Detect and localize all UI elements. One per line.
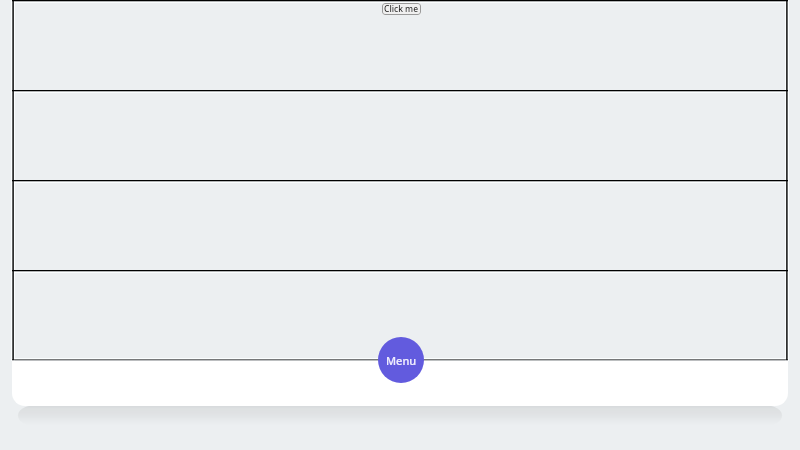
button[interactable]: List item (12, 270, 788, 360)
button[interactable]: List item (12, 0, 788, 90)
button[interactable]: List item (12, 180, 788, 270)
button[interactable]: Click me (382, 3, 421, 15)
staticText: Menu (386, 353, 417, 368)
button[interactable]: List item (12, 90, 788, 180)
button[interactable]: Bottom bar (12, 361, 788, 406)
staticText: Click me (384, 3, 419, 15)
button[interactable]: Menu (378, 337, 424, 383)
